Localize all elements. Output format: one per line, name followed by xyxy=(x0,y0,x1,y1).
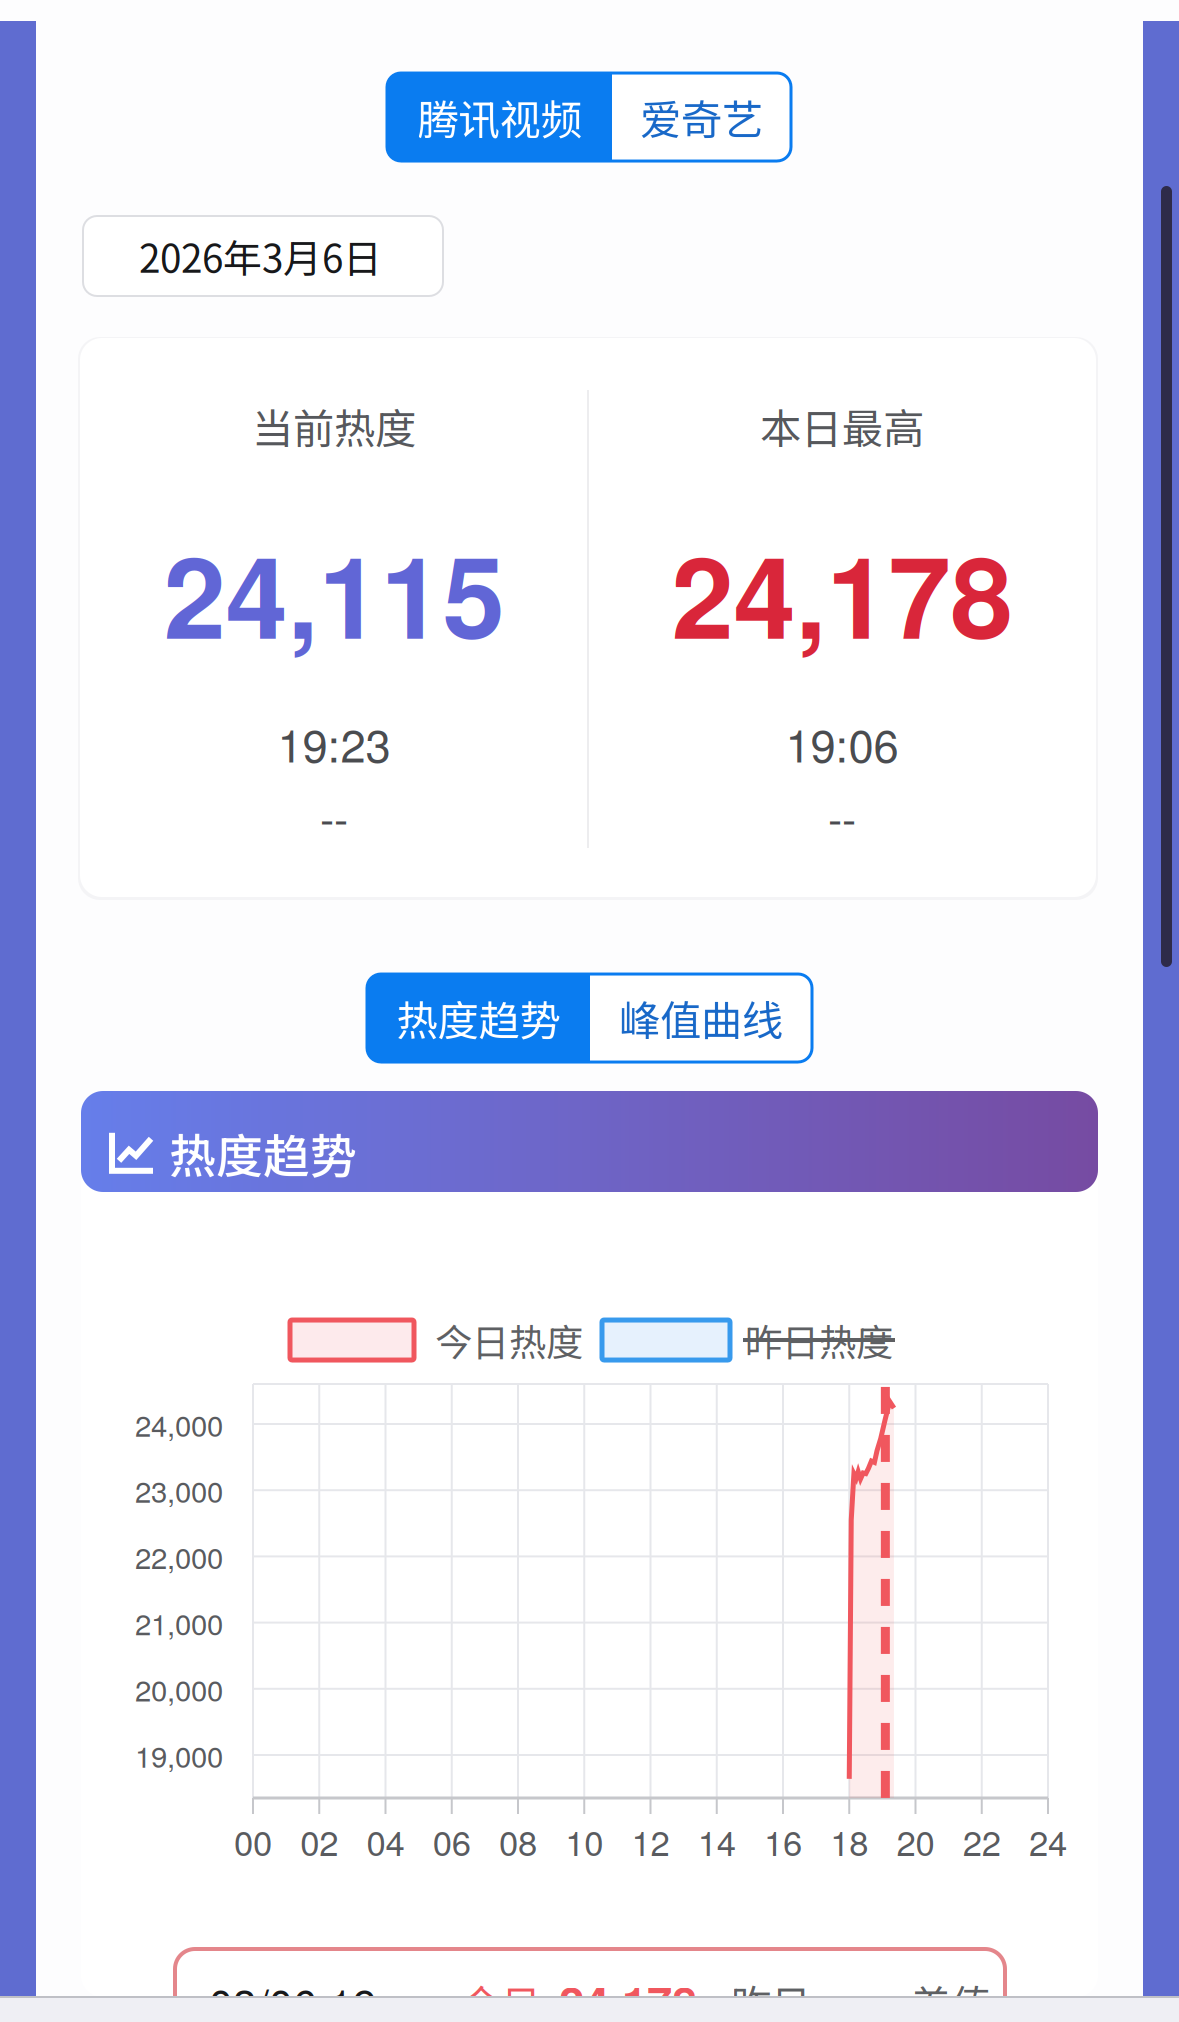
staticText: 18 xyxy=(830,1816,868,1866)
staticText: 热度趋势 xyxy=(396,988,560,1048)
button[interactable]: 腾讯视频 xyxy=(387,73,612,161)
staticText: 今日 xyxy=(461,1973,541,2022)
staticText: 24,178 xyxy=(671,513,1012,673)
staticText: 21,000 xyxy=(135,1602,223,1644)
staticText: -- xyxy=(828,785,856,847)
staticText: 22,000 xyxy=(135,1535,223,1577)
staticText: 06 xyxy=(433,1816,471,1866)
staticText: 昨日 xyxy=(731,1973,811,2022)
staticText: 24 xyxy=(1029,1816,1067,1866)
staticText: 热度趋势 xyxy=(169,1119,357,1187)
staticText: 12 xyxy=(631,1816,669,1866)
staticText: 爱奇艺 xyxy=(640,87,763,147)
staticText: 19:06 xyxy=(785,710,898,775)
staticText: 04 xyxy=(366,1816,404,1866)
staticText: 19,000 xyxy=(135,1734,223,1776)
staticText: 20,000 xyxy=(135,1668,223,1710)
staticText: 昨日热度 xyxy=(745,1313,893,1367)
staticText: 24,115 xyxy=(163,513,504,673)
staticText: 本日最高 xyxy=(760,396,924,456)
staticText: 22 xyxy=(963,1816,1001,1866)
staticText: 00 xyxy=(234,1816,272,1866)
staticText: 14 xyxy=(698,1816,736,1866)
staticText: 24,178 xyxy=(559,1969,697,2022)
button[interactable]: 2026年3月6日 xyxy=(83,216,443,296)
staticText: 03/06 19:06 xyxy=(209,1971,427,2022)
staticText: 08 xyxy=(499,1816,537,1866)
staticText: 23,000 xyxy=(135,1469,223,1511)
staticText: 19:23 xyxy=(277,710,390,775)
staticText: 当前热度 xyxy=(252,396,416,456)
button[interactable]: 今日热度 xyxy=(290,1318,584,1362)
staticText: 差值 xyxy=(911,1973,991,2022)
button[interactable]: 爱奇艺 xyxy=(612,73,791,161)
staticText: 今日热度 xyxy=(435,1313,583,1367)
button[interactable]: 峰值曲线 xyxy=(590,974,812,1062)
staticText: 10 xyxy=(565,1816,603,1866)
button[interactable]: 热度趋势 xyxy=(367,974,590,1062)
staticText: 16 xyxy=(764,1816,802,1866)
staticText: 02 xyxy=(300,1816,338,1866)
button[interactable]: 昨日热度 xyxy=(602,1318,894,1362)
staticText: 峰值曲线 xyxy=(619,988,783,1048)
staticText: -- xyxy=(320,785,348,847)
staticText: 2026年3月6日 xyxy=(139,228,382,284)
staticText: 24,000 xyxy=(135,1403,223,1445)
staticText: 20 xyxy=(896,1816,934,1866)
staticText: 腾讯视频 xyxy=(417,87,581,147)
